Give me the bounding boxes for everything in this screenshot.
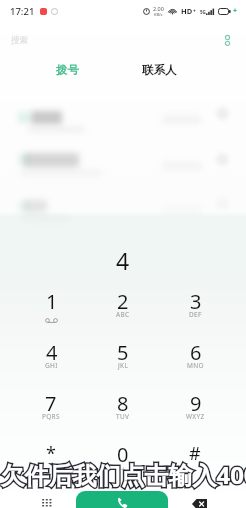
staticText: 2.00 <box>153 5 164 12</box>
button[interactable]: Hide keypad <box>30 488 64 508</box>
button[interactable]: More options <box>219 32 236 49</box>
staticText: ABC <box>116 310 130 319</box>
button[interactable]: 3 <box>159 282 231 333</box>
staticText: + <box>121 464 126 475</box>
button[interactable]: 6 <box>159 333 231 384</box>
staticText: 6 <box>190 339 202 366</box>
staticText: TUV <box>116 412 130 421</box>
staticText: 17:21 <box>10 5 35 18</box>
staticText: KB/s <box>154 12 163 17</box>
button[interactable]: # <box>159 435 231 486</box>
button[interactable]: 0 <box>87 435 159 486</box>
staticText: 7 <box>45 390 57 417</box>
staticText: PQRS <box>42 412 60 421</box>
button[interactable]: 8 <box>87 384 159 435</box>
staticText: + <box>233 6 238 16</box>
staticText: WXYZ <box>186 412 205 421</box>
staticText: 8 <box>117 390 129 417</box>
staticText: 欠件后我们点击输入400 <box>0 458 246 491</box>
button[interactable]: 7 <box>15 384 87 435</box>
staticText: 欠件后我们点击输入400 <box>0 458 246 491</box>
staticText: MNO <box>187 361 204 370</box>
staticText: 2 <box>117 288 129 315</box>
staticText: 4 <box>116 245 130 276</box>
staticText: JKL <box>118 361 129 370</box>
button[interactable]: 联系人 <box>103 59 215 81</box>
staticText: 9 <box>190 390 202 417</box>
staticText: HD <box>181 6 193 16</box>
staticText: 1 <box>46 288 58 315</box>
button[interactable]: 4 <box>15 333 87 384</box>
staticText: + <box>193 8 196 15</box>
staticText: # <box>189 441 201 466</box>
button[interactable]: 2 <box>87 282 159 333</box>
staticText: 3 <box>190 288 202 315</box>
staticText: * <box>46 441 56 466</box>
button[interactable]: Backspace <box>182 488 216 508</box>
staticText: 拨号 <box>56 63 79 77</box>
button[interactable]: 9 <box>159 384 231 435</box>
button[interactable]: 5 <box>87 333 159 384</box>
button[interactable]: * <box>15 435 87 486</box>
button[interactable]: 1 <box>15 282 87 333</box>
staticText: 搜索 <box>11 35 28 46</box>
button[interactable]: Call <box>76 491 168 508</box>
staticText: 5 <box>117 339 129 366</box>
staticText: DEF <box>189 310 202 319</box>
button[interactable] <box>0 136 246 176</box>
staticText: 0 <box>117 441 129 468</box>
button[interactable] <box>0 94 246 134</box>
button[interactable]: 拨号 <box>31 59 103 81</box>
staticText: 5G <box>200 9 206 15</box>
staticText: 联系人 <box>142 63 177 77</box>
staticText: 4 <box>46 339 58 366</box>
staticText: GHI <box>45 361 58 370</box>
button[interactable] <box>0 183 246 223</box>
